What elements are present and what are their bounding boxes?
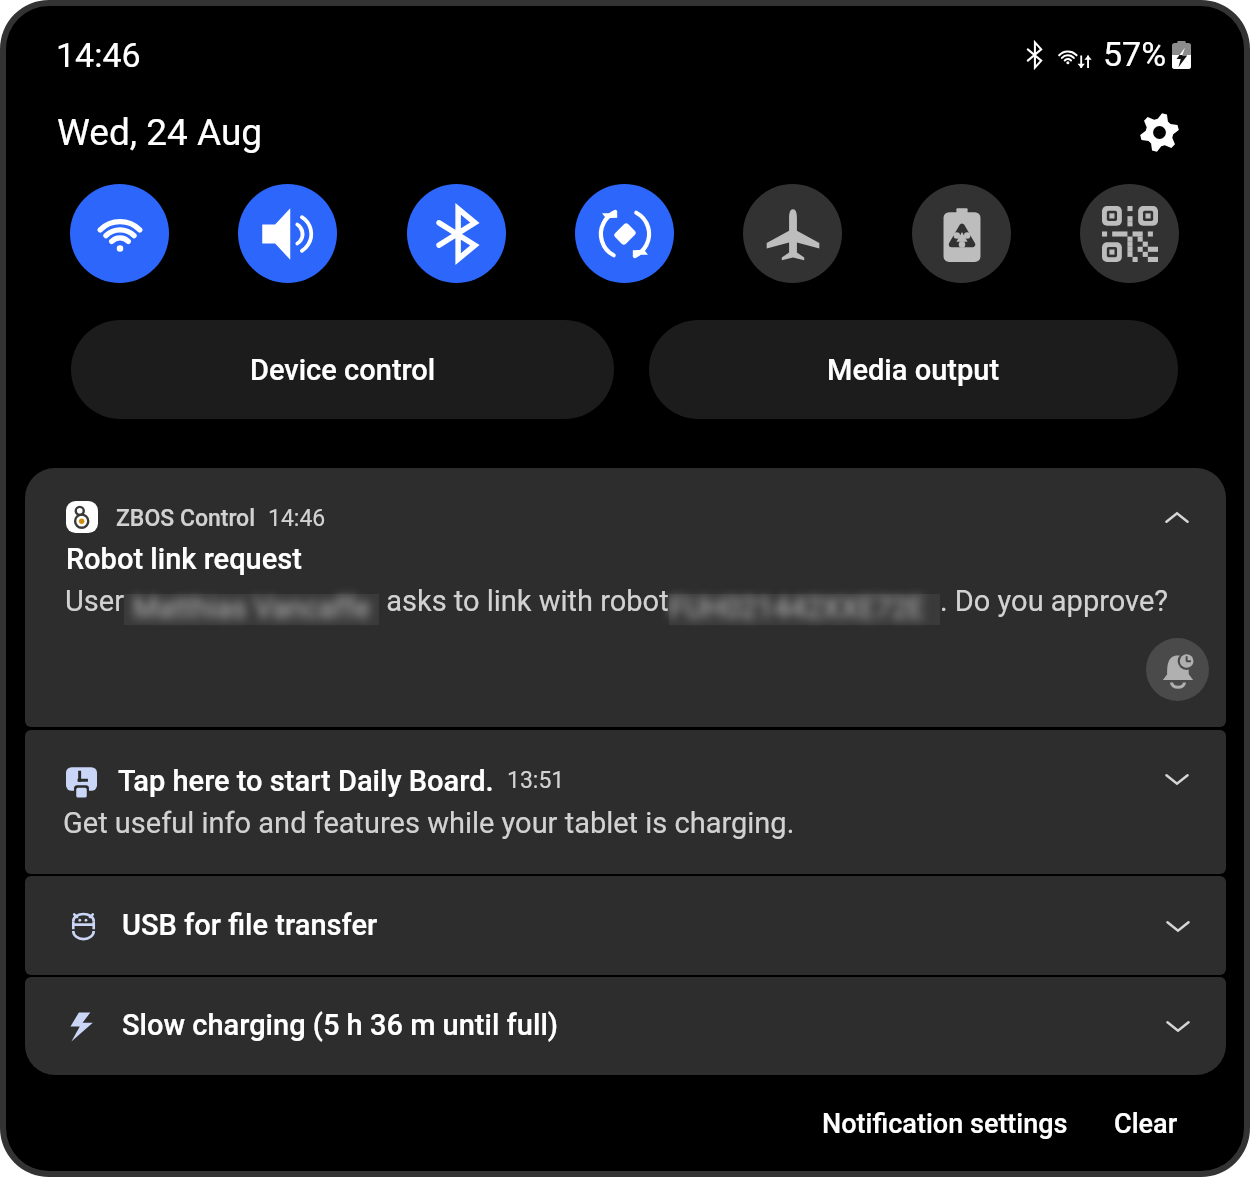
button[interactable]: Notification settings: [810, 1098, 1080, 1150]
button[interactable]: Expand: [1147, 895, 1209, 957]
staticText: FUH021442XXE72EE: [669, 591, 940, 622]
staticText: ZBOS Control: [116, 505, 256, 532]
staticText: . Do you approve?: [940, 584, 1168, 618]
button[interactable]: Bluetooth: [407, 184, 506, 283]
button[interactable]: Settings: [1128, 101, 1190, 163]
button[interactable]: Auto rotate: [575, 184, 674, 283]
button[interactable]: Media output: [649, 320, 1178, 419]
staticText: Slow charging (5 h 36 m until full): [122, 1008, 559, 1042]
button[interactable]: Clear: [1102, 1098, 1190, 1150]
button[interactable]: Power saving: [912, 184, 1011, 283]
button[interactable]: Scan QR code: [1080, 184, 1179, 283]
staticText: Robot link request: [66, 542, 302, 576]
staticText: 13:51: [507, 767, 565, 794]
button[interactable]: Expand notification: [1146, 748, 1208, 810]
staticText: 14:46: [56, 35, 141, 75]
staticText: asks to link with robot: [379, 584, 669, 618]
button[interactable]: Snooze: [1146, 638, 1209, 701]
button[interactable]: Wi-Fi: [70, 184, 169, 283]
button[interactable]: Tap here to start Daily Board.: [25, 730, 1226, 874]
button[interactable]: Collapse notification: [1146, 486, 1208, 548]
button[interactable]: Expand: [1147, 995, 1209, 1057]
staticText: Matthias Vancaffe: [133, 591, 370, 622]
staticText: Device control: [250, 353, 436, 387]
button[interactable]: Airplane mode: [743, 184, 842, 283]
button[interactable]: Slow charging (5 h 36 m until full): [25, 977, 1226, 1075]
staticText: Get useful info and features while your …: [63, 806, 795, 840]
button[interactable]: ZBOS Control: [25, 468, 1226, 727]
staticText: 14:46: [268, 505, 326, 532]
staticText: Notification settings: [822, 1108, 1068, 1140]
staticText: Clear: [1114, 1108, 1178, 1140]
staticText: USB for file transfer: [122, 908, 378, 942]
staticText: Wed, 24 Aug: [57, 111, 263, 154]
button[interactable]: USB for file transfer: [25, 876, 1226, 975]
staticText: 57%: [1103, 34, 1167, 74]
button[interactable]: Sound: [238, 184, 337, 283]
staticText: Media output: [827, 353, 1000, 387]
button[interactable]: Device control: [71, 320, 614, 419]
staticText: Tap here to start Daily Board.: [118, 764, 494, 798]
staticText: User: [65, 584, 124, 618]
